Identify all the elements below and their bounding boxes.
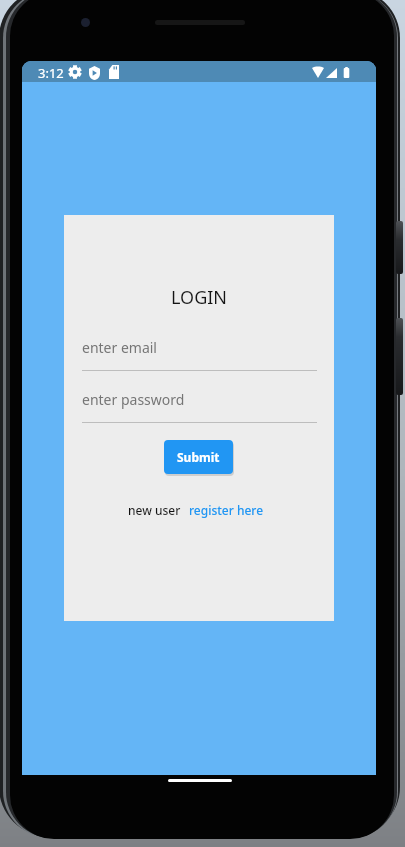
staticText: new user <box>128 502 181 518</box>
staticText: enter password <box>82 390 185 409</box>
staticText: register here <box>189 502 264 518</box>
staticText: Submit <box>177 449 220 465</box>
button[interactable]: register here <box>189 502 264 518</box>
staticText: 3:12 <box>38 64 64 82</box>
staticText: enter email <box>82 338 157 357</box>
button[interactable]: Submit <box>164 440 233 474</box>
staticText: LOGIN <box>171 285 228 310</box>
